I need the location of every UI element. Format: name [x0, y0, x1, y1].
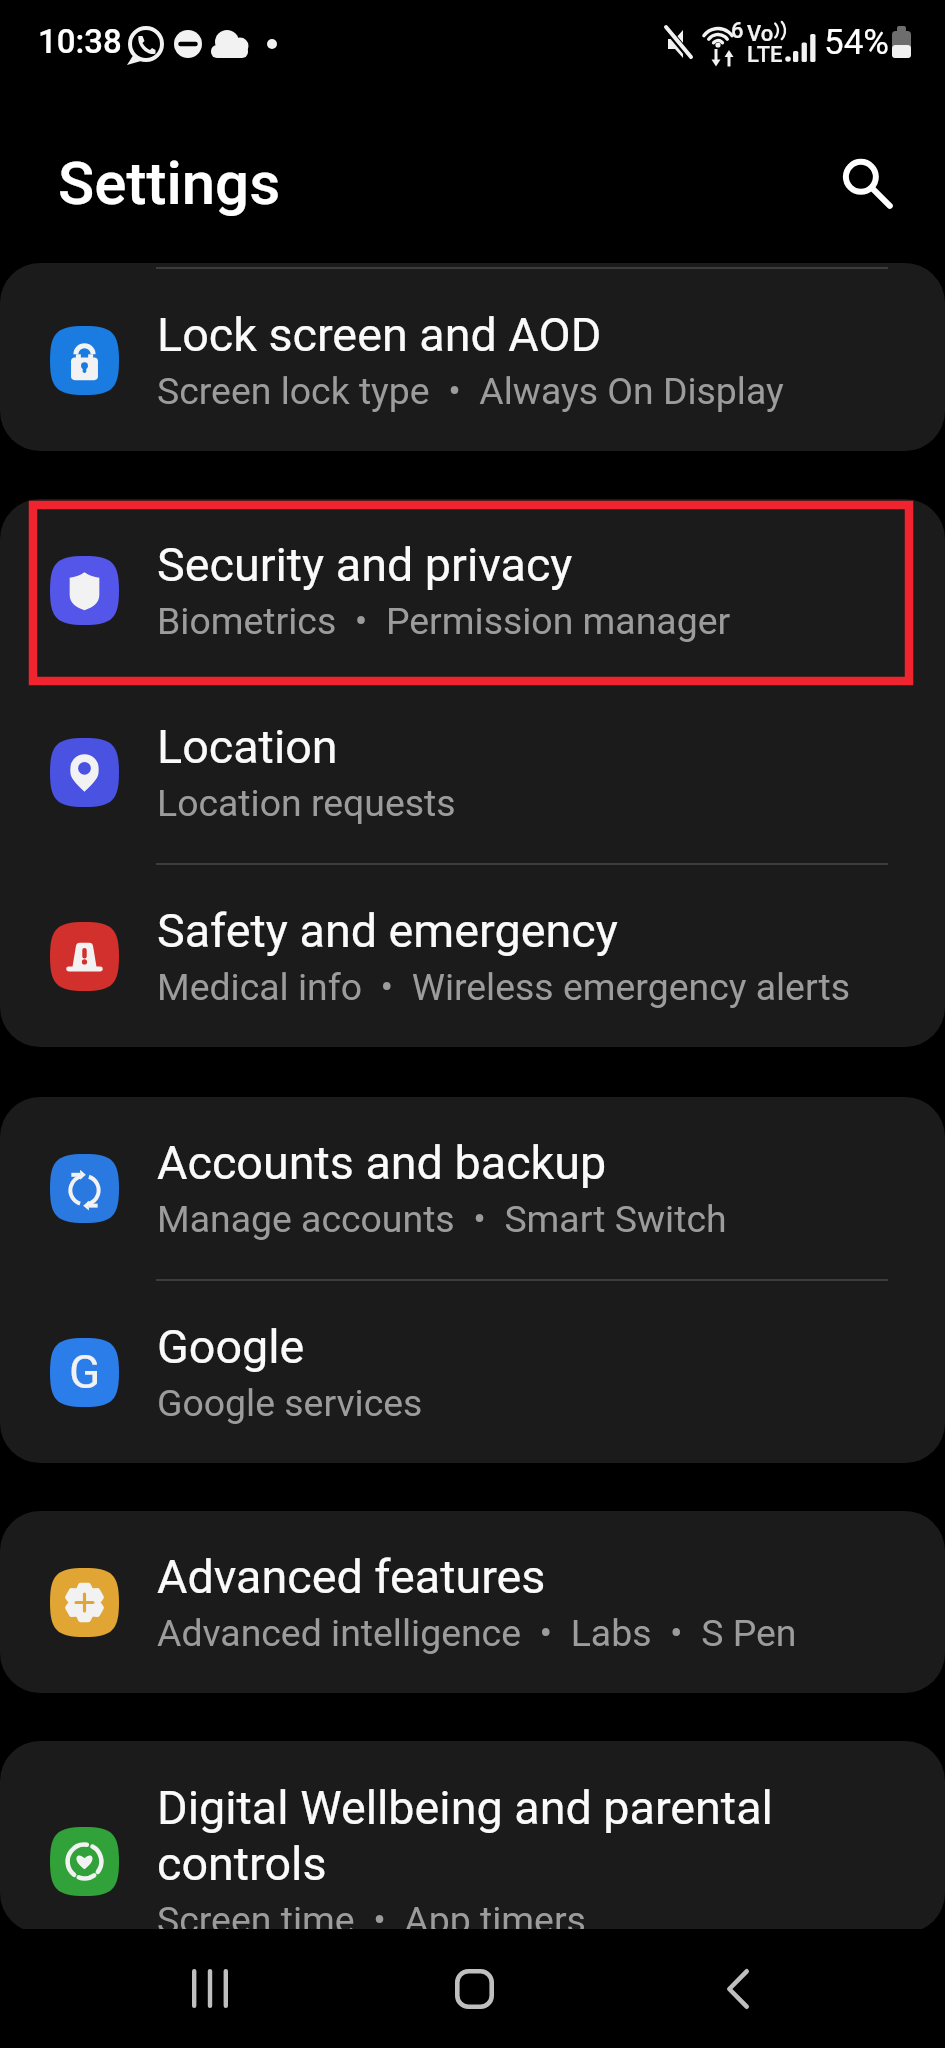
staticText: Manage accounts • Smart Switch: [157, 1197, 727, 1241]
staticText: Location requests: [157, 781, 456, 825]
button[interactable]: Security and privacy: [0, 499, 945, 681]
button[interactable]: Search: [822, 138, 914, 230]
staticText: Safety and emergency: [157, 904, 618, 959]
staticText: LTE: [747, 42, 783, 68]
staticText: Screen lock type • Always On Display: [157, 369, 784, 413]
button[interactable]: Advanced features: [0, 1511, 945, 1693]
staticText: 6: [731, 18, 744, 44]
staticText: Google services: [157, 1381, 423, 1425]
button[interactable]: Safety and emergency: [0, 865, 945, 1047]
staticText: Accounts and backup: [157, 1136, 607, 1191]
button[interactable]: Location: [0, 681, 945, 863]
button[interactable]: Lock screen and AOD: [0, 269, 945, 451]
staticText: Lock screen and AOD: [157, 308, 602, 363]
button[interactable]: Accounts and backup: [0, 1097, 945, 1279]
button[interactable]: Back: [678, 1941, 798, 2036]
button[interactable]: G: [0, 1281, 945, 1463]
staticText: Biometrics • Permission manager: [157, 599, 731, 643]
staticText: 54%: [824, 22, 889, 63]
button[interactable]: Digital Wellbeing and parental controls: [0, 1741, 945, 1933]
button[interactable]: Recent apps: [150, 1941, 270, 2036]
button[interactable]: Home: [414, 1941, 534, 2036]
staticText: Google: [157, 1320, 305, 1375]
staticText: Screen time • App timers: [157, 1898, 586, 1933]
staticText: Medical info • Wireless emergency alerts: [157, 965, 851, 1009]
staticText: Advanced features: [157, 1550, 546, 1605]
staticText: Settings: [58, 148, 281, 218]
staticText: Advanced intelligence • Labs • S Pen: [157, 1611, 797, 1655]
staticText: 10:38: [38, 22, 122, 61]
staticText: Vo: [747, 21, 774, 47]
staticText: Security and privacy: [157, 538, 573, 593]
staticText: Location: [157, 720, 338, 775]
staticText: Digital Wellbeing and parental controls: [157, 1781, 773, 1892]
staticText: G: [69, 1345, 101, 1399]
